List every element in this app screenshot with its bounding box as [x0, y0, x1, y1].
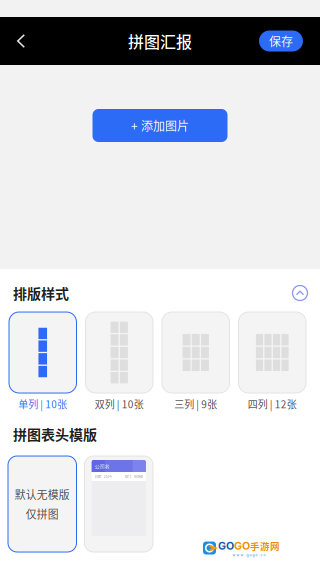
- button[interactable]: 三列 | 9张: [162, 312, 229, 415]
- staticText: 仅拼图: [26, 506, 59, 522]
- staticText: 双列 | 10张: [95, 397, 144, 411]
- staticText: 排版样式: [13, 283, 69, 303]
- button[interactable]: Back: [0, 17, 42, 65]
- button[interactable]: + 添加图片: [92, 109, 227, 142]
- staticText: 手游网: [250, 539, 280, 553]
- staticText: 默认无模版: [15, 486, 70, 502]
- button[interactable]: 单列 | 10张: [9, 312, 76, 415]
- button[interactable]: 双列 | 10张: [85, 312, 153, 415]
- staticText: GO: [218, 539, 234, 552]
- staticText: 单列 | 10张: [18, 397, 67, 411]
- button[interactable]: 保存: [259, 30, 303, 51]
- staticText: 四列 | 12张: [248, 397, 297, 411]
- staticText: 公司名: [95, 462, 110, 470]
- staticText: 拼图表头模版: [13, 424, 97, 444]
- button[interactable]: 公司名: [84, 456, 153, 552]
- staticText: + 添加图片: [131, 117, 189, 134]
- button[interactable]: 四列 | 12张: [238, 312, 306, 415]
- button[interactable]: 默认无模版: [8, 456, 76, 552]
- staticText: 部门：市场部: [125, 474, 143, 479]
- staticText: 拼图汇报: [128, 29, 192, 53]
- button[interactable]: Collapse: [287, 280, 313, 306]
- staticText: 日期：2024: [95, 474, 112, 479]
- staticText: GO: [234, 539, 250, 552]
- staticText: 三列 | 9张: [174, 397, 217, 411]
- staticText: 保存: [269, 32, 293, 50]
- staticText: w w w . g o g o . c n: [232, 553, 265, 557]
